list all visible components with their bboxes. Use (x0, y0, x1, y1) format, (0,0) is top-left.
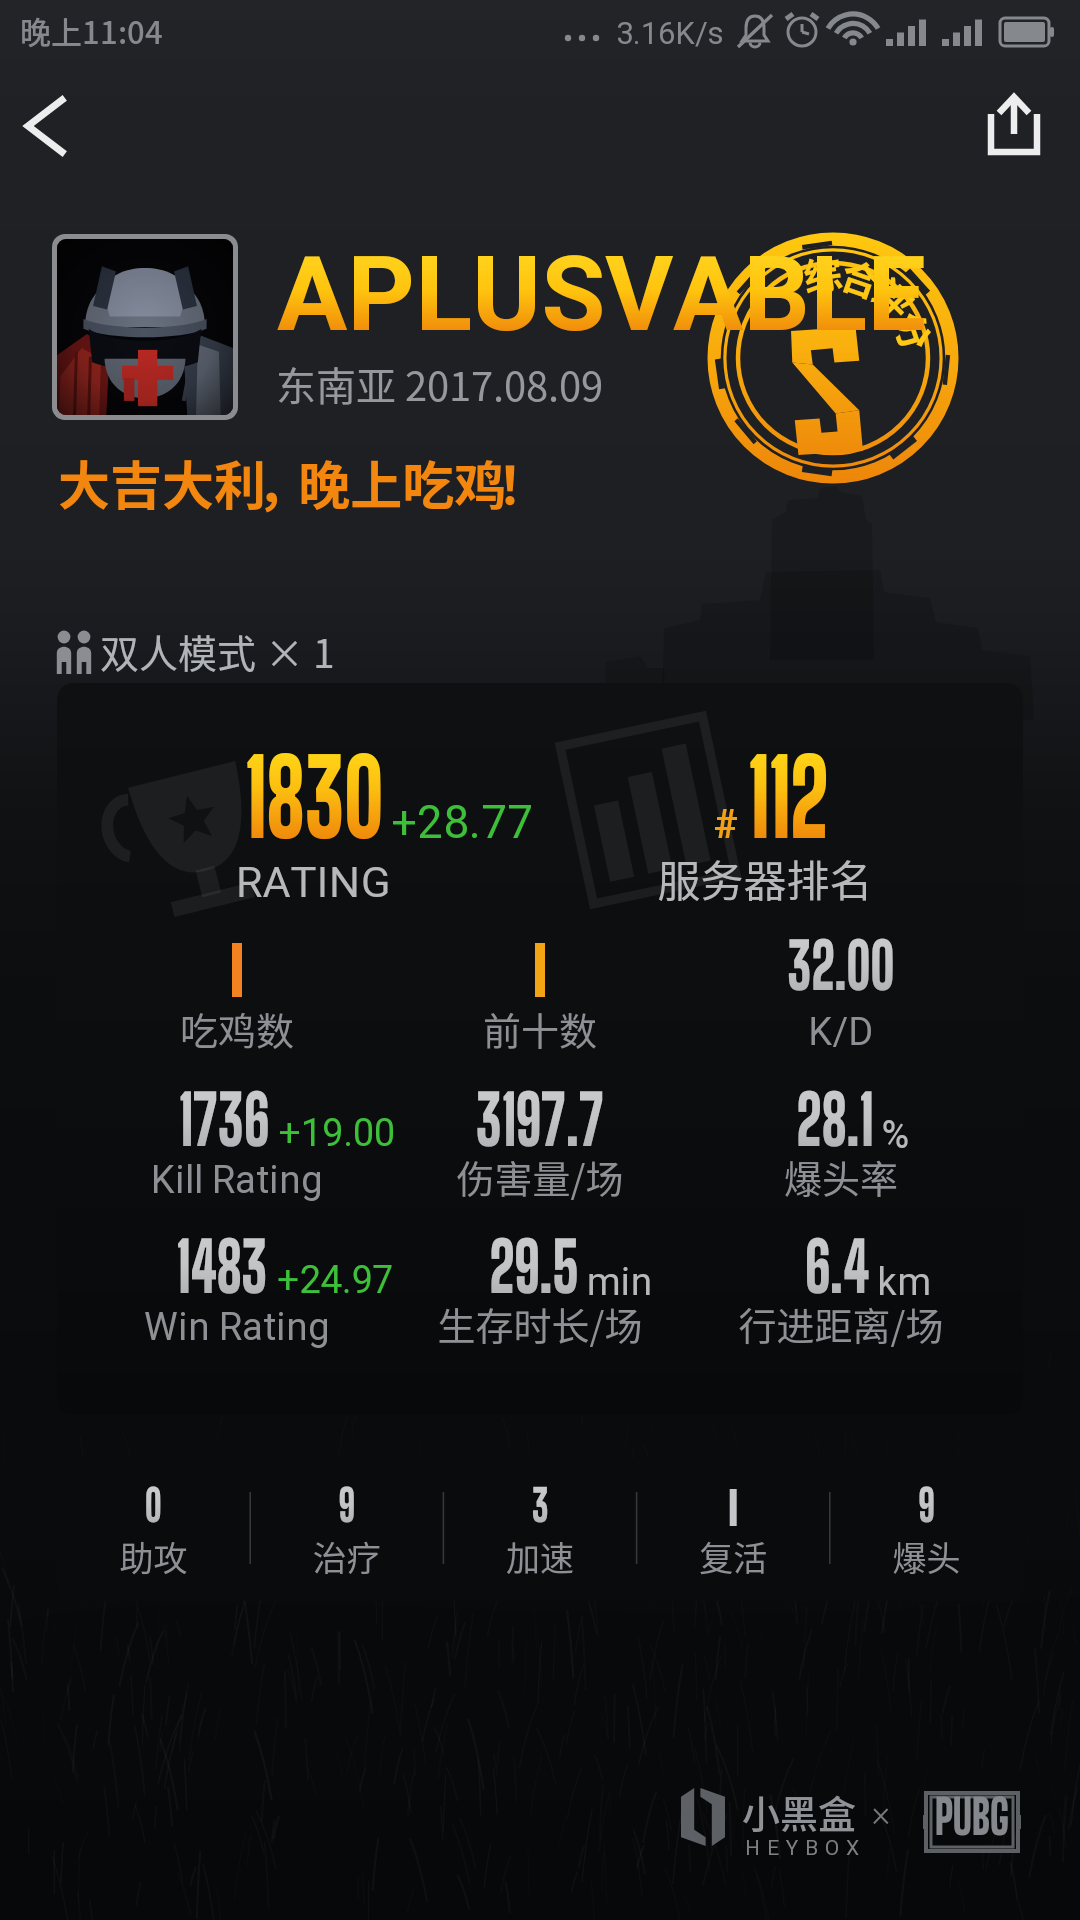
button[interactable]: Revives (636, 1458, 829, 1601)
button[interactable]: Assists (57, 1458, 250, 1601)
button[interactable]: Heals (250, 1458, 443, 1601)
button[interactable]: Player avatar (52, 234, 238, 420)
button[interactable]: Share (970, 76, 1066, 172)
button[interactable]: Boosts (443, 1458, 636, 1601)
button[interactable]: Headshots (829, 1458, 1022, 1601)
button[interactable]: Back (8, 78, 104, 174)
button[interactable]: Match statistics (57, 683, 1023, 1415)
